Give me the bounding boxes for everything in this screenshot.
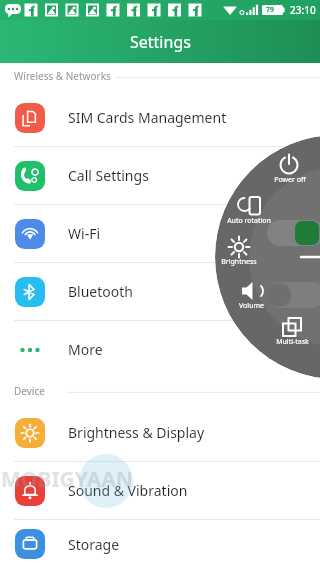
staticText: Call Settings <box>68 166 149 185</box>
staticText: Auto rotation <box>227 216 271 226</box>
button[interactable]: Bluetooth <box>0 263 320 320</box>
staticText: Storage <box>68 535 120 554</box>
button[interactable]: SIM Cards Management <box>0 89 320 146</box>
staticText: Power off <box>274 175 306 185</box>
staticText: More <box>68 340 103 359</box>
button[interactable]: Brightness & Display <box>0 404 320 461</box>
staticText: MOBIGYAAN <box>1 465 133 494</box>
staticText: Brightness <box>221 257 257 267</box>
staticText: Volume <box>239 301 264 311</box>
button[interactable]: Power off <box>262 175 318 185</box>
staticText: 79 <box>266 5 275 15</box>
button[interactable]: Auto rotation <box>212 216 286 226</box>
button[interactable]: Multi-task <box>264 337 320 347</box>
staticText: SIM Cards Management <box>68 108 227 127</box>
button[interactable]: Volume <box>226 301 276 311</box>
button[interactable]: Wi-Fi <box>0 205 320 262</box>
staticText: Device <box>14 384 45 398</box>
button[interactable]: Call Settings <box>0 147 320 204</box>
staticText: Wireless & Networks <box>14 69 111 83</box>
staticText: 23:10 <box>290 3 316 17</box>
button[interactable]: Brightness <box>205 257 273 267</box>
staticText: Bluetooth <box>68 282 133 301</box>
staticText: Wi-Fi <box>68 224 101 243</box>
staticText: Brightness & Display <box>68 423 205 442</box>
other: Quick actions menu <box>0 0 320 568</box>
button[interactable]: Storage <box>0 520 320 568</box>
button[interactable]: More <box>0 321 320 378</box>
staticText: Sound & Vibration <box>68 481 188 500</box>
staticText: Multi-task <box>276 337 309 347</box>
button[interactable]: Sound & Vibration <box>0 462 320 519</box>
staticText: Settings <box>130 31 191 53</box>
